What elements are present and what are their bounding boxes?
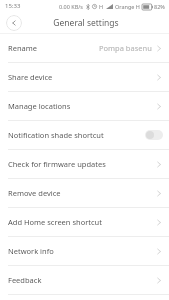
staticText: Check for firmware updates <box>8 159 106 169</box>
button[interactable]: Check for firmware updates <box>0 150 169 178</box>
staticText: Remove device <box>8 188 61 198</box>
staticText: Add Home screen shortcut <box>8 217 102 227</box>
button[interactable]: Network info <box>0 237 169 265</box>
staticText: Rename <box>8 43 37 53</box>
staticText: Orange H <box>115 3 140 10</box>
button[interactable]: Add Home screen shortcut <box>0 208 169 236</box>
button[interactable]: Feedback <box>0 266 169 294</box>
staticText: H <box>99 3 104 10</box>
staticText: Share device <box>8 72 53 82</box>
staticText: 15:33 <box>5 2 21 10</box>
button[interactable]: Notification shade shortcut <box>0 121 169 149</box>
staticText: 0.00 KB/s <box>59 3 84 10</box>
button[interactable]: Back <box>6 15 22 31</box>
staticText: Manage locations <box>8 101 71 111</box>
staticText: General settings <box>53 17 119 29</box>
button[interactable]: Share device <box>0 63 169 91</box>
button[interactable]: Rename <box>0 34 169 62</box>
staticText: 82% <box>154 3 165 10</box>
staticText: Feedback <box>8 275 42 285</box>
staticText: Pompa basenu <box>99 43 152 53</box>
staticText: Notification shade shortcut <box>8 130 104 140</box>
button[interactable]: Notification shade shortcut toggle <box>145 130 163 140</box>
staticText: Network info <box>8 246 54 256</box>
button[interactable]: Manage locations <box>0 92 169 120</box>
button[interactable]: Remove device <box>0 179 169 207</box>
